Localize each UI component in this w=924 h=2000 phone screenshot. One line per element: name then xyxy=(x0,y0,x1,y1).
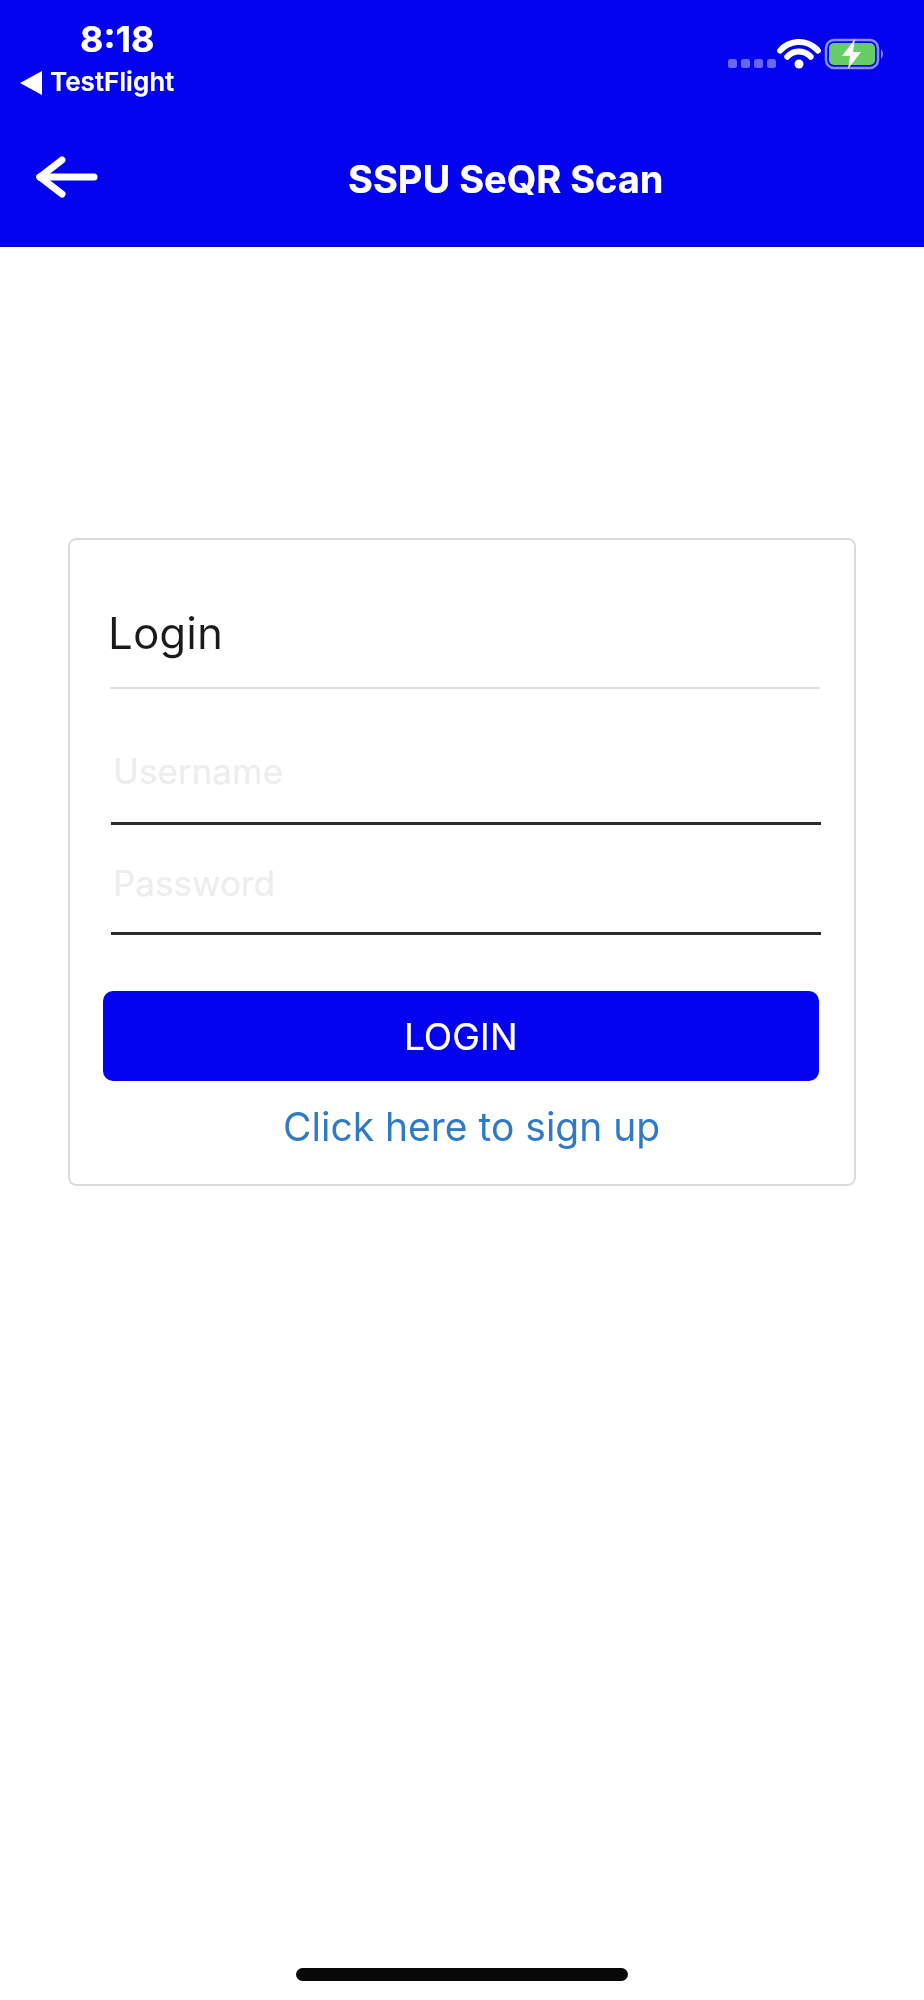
staticText: 8:18 xyxy=(80,17,155,61)
button[interactable]: Click here to sign up xyxy=(78,1096,856,1156)
button[interactable]: LOGIN xyxy=(103,991,819,1081)
staticText: TestFlight xyxy=(50,66,175,97)
staticText: Username xyxy=(113,750,284,792)
button[interactable] xyxy=(24,148,108,208)
staticText: Click here to sign up xyxy=(283,1103,661,1150)
staticText: Login xyxy=(108,606,223,659)
staticText: Password xyxy=(113,862,275,904)
staticText: SSPU SeQR Scan xyxy=(348,156,664,202)
staticText: LOGIN xyxy=(404,1014,518,1059)
